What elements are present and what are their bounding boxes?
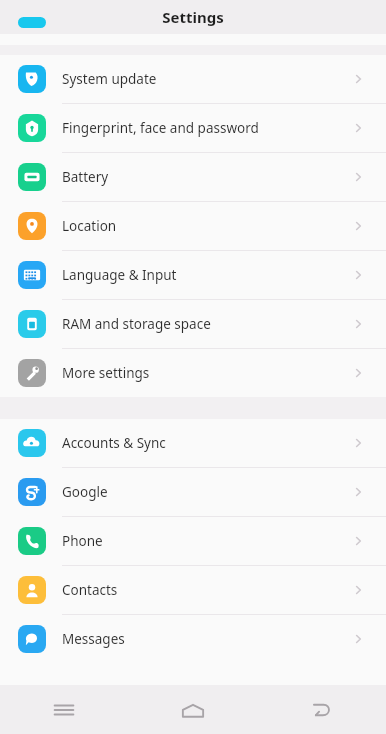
staticText: Contacts bbox=[62, 581, 352, 599]
staticText: RAM and storage space bbox=[62, 315, 352, 333]
staticText: Language & Input bbox=[62, 266, 352, 284]
button[interactable]: Battery bbox=[0, 153, 386, 201]
button[interactable]: Messages bbox=[0, 615, 386, 663]
staticText: Fingerprint, face and password bbox=[62, 119, 352, 137]
button[interactable]: RAM and storage space bbox=[0, 300, 386, 348]
staticText: Battery bbox=[62, 168, 352, 186]
staticText: Messages bbox=[62, 630, 352, 648]
staticText: Location bbox=[62, 217, 352, 235]
button[interactable]: Contacts bbox=[0, 566, 386, 614]
button[interactable]: System update bbox=[0, 55, 386, 103]
staticText: Google bbox=[62, 483, 352, 501]
staticText: System update bbox=[62, 70, 352, 88]
button[interactable]: Location bbox=[0, 202, 386, 250]
button[interactable]: Fingerprint, face and password bbox=[0, 104, 386, 152]
button[interactable]: More settings bbox=[0, 349, 386, 397]
button[interactable]: Google bbox=[0, 468, 386, 516]
staticText: Settings bbox=[162, 7, 224, 27]
button[interactable]: Accounts & Sync bbox=[0, 419, 386, 467]
button[interactable]: Recents bbox=[0, 685, 128, 734]
staticText: Phone bbox=[62, 532, 352, 550]
staticText: Accounts & Sync bbox=[62, 434, 352, 452]
button[interactable]: Language & Input bbox=[0, 251, 386, 299]
button[interactable]: Phone bbox=[0, 517, 386, 565]
button[interactable]: Back bbox=[257, 685, 386, 734]
staticText: More settings bbox=[62, 364, 352, 382]
button[interactable]: Home bbox=[128, 685, 257, 734]
